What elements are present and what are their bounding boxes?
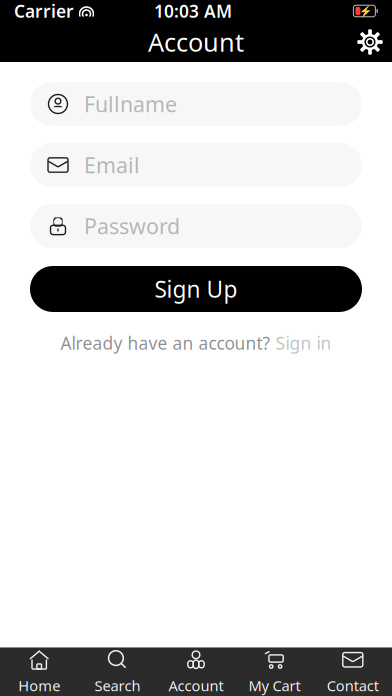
button[interactable]: Fullname [30, 82, 362, 126]
staticText: 10:03 AM [154, 0, 232, 22]
button[interactable]: My Cart [235, 648, 314, 696]
button[interactable]: Already have an account? [30, 332, 362, 354]
button[interactable]: Sign Up [30, 266, 362, 312]
button[interactable]: Password [30, 204, 362, 248]
staticText: Fullname [84, 90, 177, 118]
staticText: Contact [327, 676, 379, 695]
staticText: Home [18, 676, 60, 695]
button[interactable]: Account [157, 648, 235, 696]
staticText: Sign Up [154, 274, 237, 304]
staticText: Sign in [275, 331, 331, 354]
staticText: Search [95, 676, 141, 695]
button[interactable]: Email [30, 143, 362, 187]
button[interactable]: Settings [348, 22, 392, 62]
staticText: ⚡ [359, 5, 372, 17]
button[interactable]: Search [78, 648, 157, 696]
staticText: Carrier [14, 0, 74, 22]
staticText: Password [84, 212, 180, 240]
staticText: My Cart [248, 676, 300, 695]
staticText: Account [168, 676, 223, 695]
staticText: Email [84, 151, 140, 179]
button[interactable]: Contact [314, 648, 392, 696]
button[interactable]: Home [0, 648, 78, 696]
staticText: Account [148, 25, 244, 59]
staticText: Already have an account? [60, 331, 270, 354]
